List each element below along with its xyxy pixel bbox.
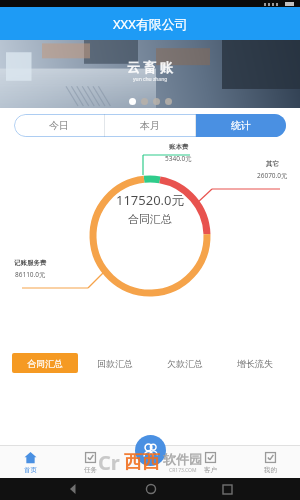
staticText: 账本费 <box>169 143 189 151</box>
staticText: XXX有限公司 <box>113 15 188 33</box>
button[interactable]: 欠款汇总 <box>152 353 218 373</box>
button[interactable]: 回款汇总 <box>82 353 148 373</box>
button[interactable]: 首页 <box>0 446 60 478</box>
staticText: 增长流失 <box>237 358 273 369</box>
staticText: 合同汇总 <box>128 212 172 226</box>
staticText: 统计 <box>231 119 251 132</box>
button[interactable]: 统计 <box>196 114 286 137</box>
staticText: Cr <box>98 449 120 476</box>
staticText: 首页 <box>24 466 37 474</box>
button[interactable]: Add customer <box>135 435 166 466</box>
staticText: CR173.COM <box>169 467 197 474</box>
staticText: 其它 <box>266 160 279 168</box>
staticText: yun chu zhang <box>133 76 168 83</box>
button[interactable]: 任务 <box>60 446 120 478</box>
staticText: 记账服务费 <box>14 259 47 267</box>
staticText: 本月 <box>140 119 160 132</box>
staticText: 86110.0元 <box>15 270 46 279</box>
staticText: 云 畜 账 <box>127 58 173 76</box>
staticText: 26070.0元 <box>257 171 288 180</box>
staticText: 我的 <box>264 466 277 474</box>
staticText: 客户 <box>204 466 217 474</box>
button[interactable]: XXX有限公司 <box>0 7 300 40</box>
staticText: 西西 <box>124 451 160 474</box>
button[interactable]: 今日 <box>14 114 104 137</box>
button[interactable]: 我的 <box>240 446 300 478</box>
staticText: 5340.0元 <box>165 154 192 163</box>
staticText: 回款汇总 <box>97 358 133 369</box>
button[interactable]: 增长流失 <box>222 353 288 373</box>
staticText: 今日 <box>49 119 69 132</box>
staticText: 欠款汇总 <box>167 358 203 369</box>
button[interactable]: 本月 <box>105 114 195 137</box>
button[interactable]: 客户 <box>180 446 240 478</box>
button[interactable]: 合同汇总 <box>12 353 78 373</box>
staticText: 合同汇总 <box>27 358 63 369</box>
staticText: 软件园 <box>163 451 202 467</box>
staticText: 117520.0元 <box>116 191 185 209</box>
staticText: 任务 <box>84 466 97 474</box>
